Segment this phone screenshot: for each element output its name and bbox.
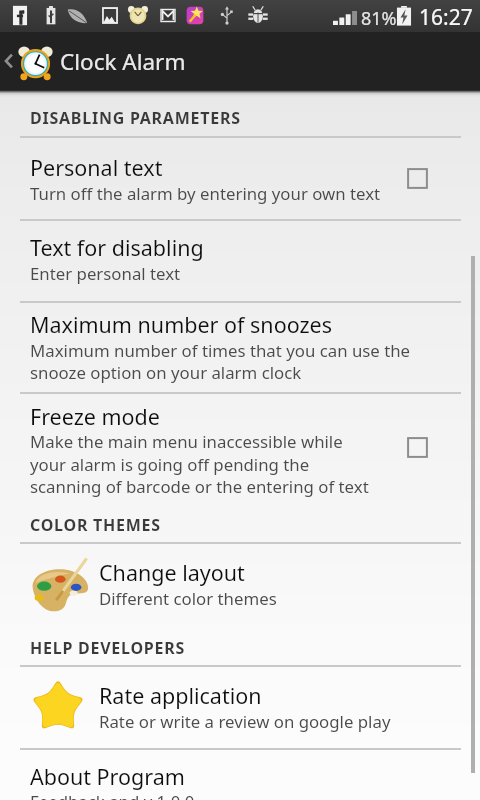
staticText: Make the main menu inaccessible while (30, 430, 343, 453)
button[interactable] (0, 749, 480, 800)
button[interactable] (0, 542, 480, 628)
staticText: Rate or write a review on google play (99, 710, 391, 733)
staticText: Personal text (30, 153, 163, 182)
staticText: Rate application (99, 681, 262, 710)
staticText: Text for disabling (30, 233, 204, 262)
button[interactable] (0, 665, 480, 747)
staticText: Maximum number of times that you can use… (30, 339, 411, 362)
button[interactable] (0, 392, 480, 505)
staticText: snooze option on your alarm clock (30, 361, 302, 384)
button[interactable] (0, 301, 480, 391)
button[interactable]: Back (0, 32, 58, 90)
staticText: COLOR THEMES (30, 514, 161, 536)
staticText: Different color themes (99, 587, 277, 610)
staticText: Maximum number of snoozes (30, 310, 332, 339)
staticText: 16:27 (419, 3, 473, 32)
staticText: Turn off the alarm by entering your own … (30, 182, 381, 205)
staticText: HELP DEVELOPERS (30, 637, 186, 659)
staticText: scanning of barcode or the entering of t… (30, 475, 369, 498)
staticText: About Program (30, 762, 185, 791)
staticText: your alarm is going off pending the (30, 453, 310, 476)
staticText: DISABLING PARAMETERS (30, 107, 241, 129)
staticText: Clock Alarm (60, 46, 186, 77)
staticText: Freeze mode (30, 402, 160, 431)
staticText: Change layout (99, 558, 245, 587)
staticText: 81% (361, 6, 397, 31)
button[interactable] (0, 219, 480, 300)
staticText: Enter personal text (30, 262, 181, 285)
button[interactable] (0, 136, 480, 218)
staticText: Feedback and v 1.0.0 (30, 790, 195, 800)
